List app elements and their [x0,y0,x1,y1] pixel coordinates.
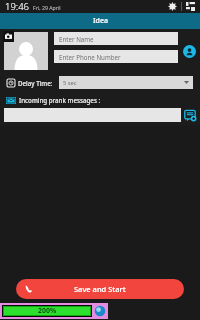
staticText: Save and Start [74,284,126,294]
staticText: Enter Name [59,35,94,43]
button[interactable]: Choose photo [4,32,48,70]
button[interactable]: Pick contact [183,45,196,58]
staticText: Fri, 29 April [33,4,61,11]
staticText: 5 sec [63,79,77,87]
button[interactable]: Enter Name [54,32,178,45]
button[interactable]: Add message [184,109,197,122]
staticText: 19:46 [5,0,30,13]
button[interactable]: 5 sec [59,76,193,89]
staticText: Enter Phone Number [59,53,121,61]
button[interactable]: Save and Start [16,279,184,299]
staticText: Idea [93,16,108,26]
button[interactable]: Booster [94,305,106,317]
staticText: 200% [38,306,57,316]
button[interactable]: Quick settings [185,1,196,12]
button[interactable]: Settings [167,1,178,12]
staticText: Delay Time: [18,79,53,87]
staticText: Incoming prank messages : [19,96,101,104]
button[interactable]: Enter Phone Number [54,50,178,63]
